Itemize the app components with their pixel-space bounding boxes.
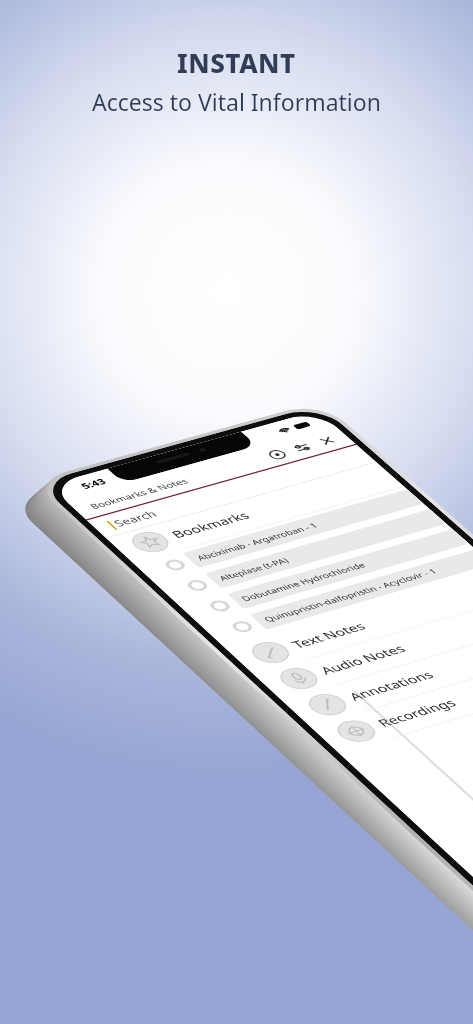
button[interactable]: Abciximab - Argatroban - 1	[182, 489, 424, 568]
staticText: Annotations	[345, 668, 438, 704]
staticText: Quinupristin-dalfopristin - Acyclovir - …	[261, 567, 440, 624]
staticText: Bookmarks	[167, 509, 254, 541]
staticText: Search	[110, 508, 160, 529]
staticText: Abciximab - Argatroban - 1	[194, 521, 321, 562]
staticText: 5:43	[78, 476, 109, 491]
staticText: Recordings	[373, 696, 460, 730]
button[interactable]: Alteplase (t-PA)	[205, 509, 447, 588]
staticText: Bookmarks & Notes	[87, 476, 191, 511]
button[interactable]: Filter	[289, 441, 315, 454]
staticText: INSTANT	[177, 45, 296, 80]
staticText: Access to Vital Information	[92, 86, 381, 117]
staticText: Dobutamine Hydrochloride	[238, 560, 369, 603]
button[interactable]: Annotations	[282, 620, 473, 727]
staticText: Alteplase (t-PA)	[216, 556, 292, 583]
button[interactable]: Record	[264, 448, 290, 462]
staticText: Text Notes	[288, 619, 370, 651]
button[interactable]: Close	[314, 434, 340, 448]
button[interactable]: Audio Notes	[254, 594, 473, 701]
staticText: Audio Notes	[316, 642, 410, 677]
button[interactable]: Quinupristin-dalfopristin - Acyclovir - …	[249, 549, 473, 630]
button[interactable]: Bookmarks	[106, 462, 404, 563]
button[interactable]: Recordings	[311, 645, 473, 754]
button[interactable]: Dobutamine Hydrochloride	[227, 529, 469, 609]
button[interactable]: Text Notes	[226, 569, 473, 674]
